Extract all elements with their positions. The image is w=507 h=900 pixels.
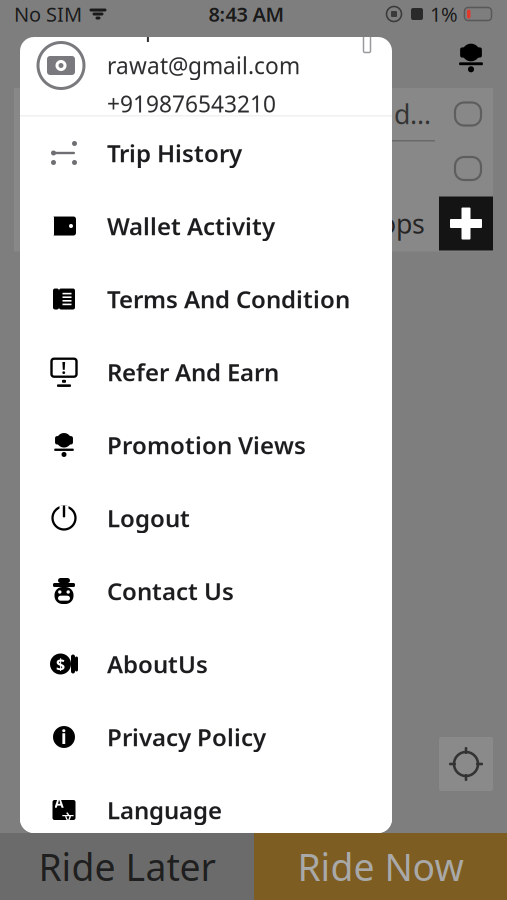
staticText: 1% — [430, 1, 458, 27]
button[interactable]: ! — [20, 335, 392, 408]
staticText: Refer And Earn — [107, 356, 279, 388]
staticText: d… — [394, 96, 431, 132]
staticText: i — [61, 725, 67, 749]
staticText: 8:43 AM — [208, 1, 284, 27]
staticText: Terms And Condition — [107, 283, 350, 315]
staticText: A — [54, 794, 63, 811]
staticText: 文 — [62, 811, 74, 826]
staticText: Shilpa Rawat — [107, 12, 244, 42]
button[interactable]: Notifications — [449, 36, 493, 80]
staticText: stops — [357, 206, 425, 241]
staticText: Logout — [107, 502, 190, 534]
button[interactable]: i — [20, 700, 392, 773]
staticText: +919876543210 — [107, 89, 276, 119]
button[interactable]: $ — [20, 627, 392, 700]
staticText: Language — [107, 794, 222, 826]
button[interactable]: Contact Us — [20, 554, 392, 627]
staticText: rawat@gmail.com — [107, 50, 300, 80]
button[interactable]: A — [20, 773, 392, 846]
button[interactable]: Edit profile — [354, 27, 380, 55]
button[interactable]: Recenter map — [439, 737, 493, 791]
staticText: AboutUs — [107, 648, 208, 680]
button[interactable]: Trip History — [20, 116, 392, 189]
button[interactable]: Ride Now — [254, 833, 507, 900]
staticText: Contact Us — [107, 575, 234, 607]
staticText: Ride Now — [297, 842, 463, 891]
button[interactable]: Ride Later — [0, 833, 254, 900]
staticText: Trip History — [107, 137, 242, 169]
button[interactable]: Menu — [14, 38, 50, 78]
staticText: ! — [61, 357, 66, 378]
staticText: No SIM — [14, 1, 82, 27]
staticText: Privacy Policy — [107, 721, 266, 753]
staticText: Wallet Activity — [107, 210, 275, 242]
staticText: Promotion Views — [107, 429, 306, 461]
button[interactable]: Terms And Condition — [20, 262, 392, 335]
button[interactable]: Wallet Activity — [20, 189, 392, 262]
button[interactable]: Logout — [20, 481, 392, 554]
staticText: $ — [56, 653, 65, 675]
button[interactable]: Promotion Views — [20, 408, 392, 481]
button[interactable]: Add stop — [439, 196, 493, 250]
staticText: Ride Later — [38, 842, 215, 891]
